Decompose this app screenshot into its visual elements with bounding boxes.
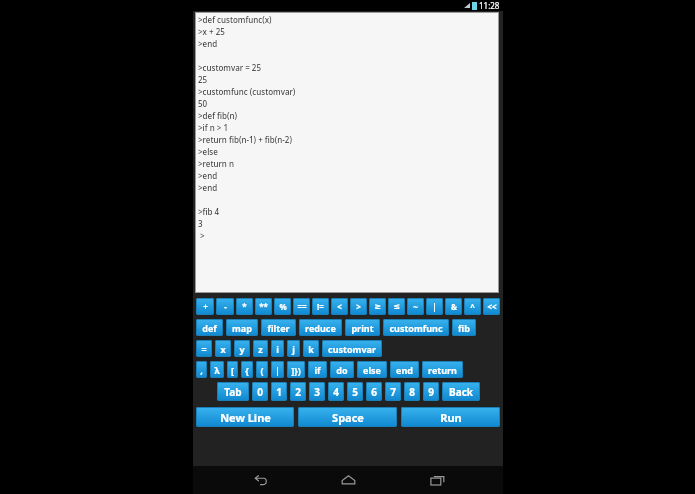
button[interactable]: Run	[401, 407, 500, 427]
button[interactable]: else	[357, 361, 387, 378]
button[interactable]: filter	[261, 319, 296, 336]
button[interactable]: 3	[309, 382, 325, 401]
staticText: (	[260, 364, 264, 376]
button[interactable]: Tab	[217, 382, 249, 401]
button[interactable]: j	[287, 340, 300, 357]
button[interactable]: 9	[423, 382, 439, 401]
staticText: ^	[470, 301, 475, 312]
button[interactable]: {	[241, 361, 253, 378]
button[interactable]: >	[350, 298, 367, 315]
button[interactable]: if	[308, 361, 327, 378]
button[interactable]: def	[196, 319, 223, 336]
button[interactable]: customvar	[322, 340, 382, 357]
staticText: 8	[409, 385, 415, 399]
staticText: >x + 25	[198, 26, 225, 37]
button[interactable]: 0	[252, 382, 268, 401]
button[interactable]: [	[227, 361, 238, 378]
button[interactable]: i	[271, 340, 284, 357]
button[interactable]: y	[234, 340, 250, 357]
button[interactable]: z	[253, 340, 268, 357]
staticText: Run	[440, 410, 462, 425]
button[interactable]: Recents	[415, 466, 459, 494]
button[interactable]: =	[196, 340, 212, 357]
button[interactable]: 5	[347, 382, 363, 401]
staticText: y	[239, 343, 245, 355]
button[interactable]: >def customfunc(x)	[195, 12, 499, 293]
button[interactable]: Home	[326, 466, 370, 494]
button[interactable]: 6	[366, 382, 382, 401]
button[interactable]: x	[215, 340, 231, 357]
staticText: customvar	[328, 343, 376, 355]
button[interactable]: customfunc	[383, 319, 449, 336]
button[interactable]: 1	[271, 382, 287, 401]
button[interactable]: λ	[210, 361, 224, 378]
staticText: !=	[317, 301, 324, 312]
button[interactable]: ~	[407, 298, 424, 315]
staticText: Tab	[224, 385, 242, 399]
button[interactable]: Back	[442, 382, 480, 401]
button[interactable]: ^	[464, 298, 481, 315]
button[interactable]: +	[196, 298, 214, 315]
staticText: end	[396, 364, 413, 376]
button[interactable]: return	[422, 361, 463, 378]
staticText: ~	[413, 301, 418, 312]
button[interactable]: !=	[312, 298, 329, 315]
staticText: >customfunc (customvar)	[198, 86, 296, 97]
button[interactable]: Back	[238, 466, 282, 494]
staticText: +	[203, 301, 208, 312]
button[interactable]: end	[390, 361, 419, 378]
button[interactable]: 4	[328, 382, 344, 401]
staticText: 2	[295, 385, 301, 399]
staticText: 9	[428, 385, 434, 399]
button[interactable]: |	[426, 298, 443, 315]
staticText: >else	[198, 146, 218, 157]
button[interactable]: &	[445, 298, 462, 315]
button[interactable]: ,	[196, 361, 207, 378]
staticText: >end	[198, 170, 218, 181]
staticText: >return fib(n-1) + fib(n-2)	[198, 134, 292, 145]
staticText: <	[337, 301, 342, 312]
button[interactable]: (	[256, 361, 268, 378]
staticText: 5	[352, 385, 358, 399]
staticText: >def customfunc(x)	[198, 14, 272, 25]
staticText: map	[232, 322, 252, 334]
button[interactable]: ==	[293, 298, 310, 315]
staticText: do	[336, 364, 348, 376]
button[interactable]: New Line	[196, 407, 294, 427]
staticText: 3	[314, 385, 320, 399]
button[interactable]: <<	[483, 298, 500, 315]
button[interactable]: map	[226, 319, 258, 336]
button[interactable]: ≥	[369, 298, 386, 315]
button[interactable]: do	[330, 361, 354, 378]
staticText: z	[258, 343, 263, 355]
button[interactable]: fib	[452, 319, 476, 336]
staticText: >if n > 1	[198, 122, 228, 133]
staticText: print	[351, 322, 374, 334]
button[interactable]: |	[271, 361, 284, 378]
button[interactable]: 7	[385, 382, 401, 401]
button[interactable]: <	[331, 298, 348, 315]
button[interactable]: reduce	[299, 319, 342, 336]
button[interactable]: **	[255, 298, 272, 315]
staticText: Back	[449, 385, 473, 399]
button[interactable]: Space	[298, 407, 397, 427]
button[interactable]: 2	[290, 382, 306, 401]
button[interactable]: -	[216, 298, 234, 315]
staticText: i	[276, 343, 279, 355]
button[interactable]: ≤	[388, 298, 405, 315]
button[interactable]: print	[345, 319, 380, 336]
staticText: ≤	[393, 302, 400, 311]
staticText: >end	[198, 182, 218, 193]
button[interactable]: *	[236, 298, 253, 315]
button[interactable]: ]})	[287, 361, 305, 378]
staticText: >	[198, 230, 205, 241]
button[interactable]: %	[274, 298, 291, 315]
staticText: 11:28	[479, 0, 500, 11]
staticText: customfunc	[389, 322, 443, 334]
staticText: λ	[214, 364, 220, 376]
staticText: **	[259, 301, 268, 312]
button[interactable]: k	[303, 340, 319, 357]
button[interactable]: 8	[404, 382, 420, 401]
staticText: 7	[390, 385, 396, 399]
staticText: fib	[458, 322, 470, 334]
